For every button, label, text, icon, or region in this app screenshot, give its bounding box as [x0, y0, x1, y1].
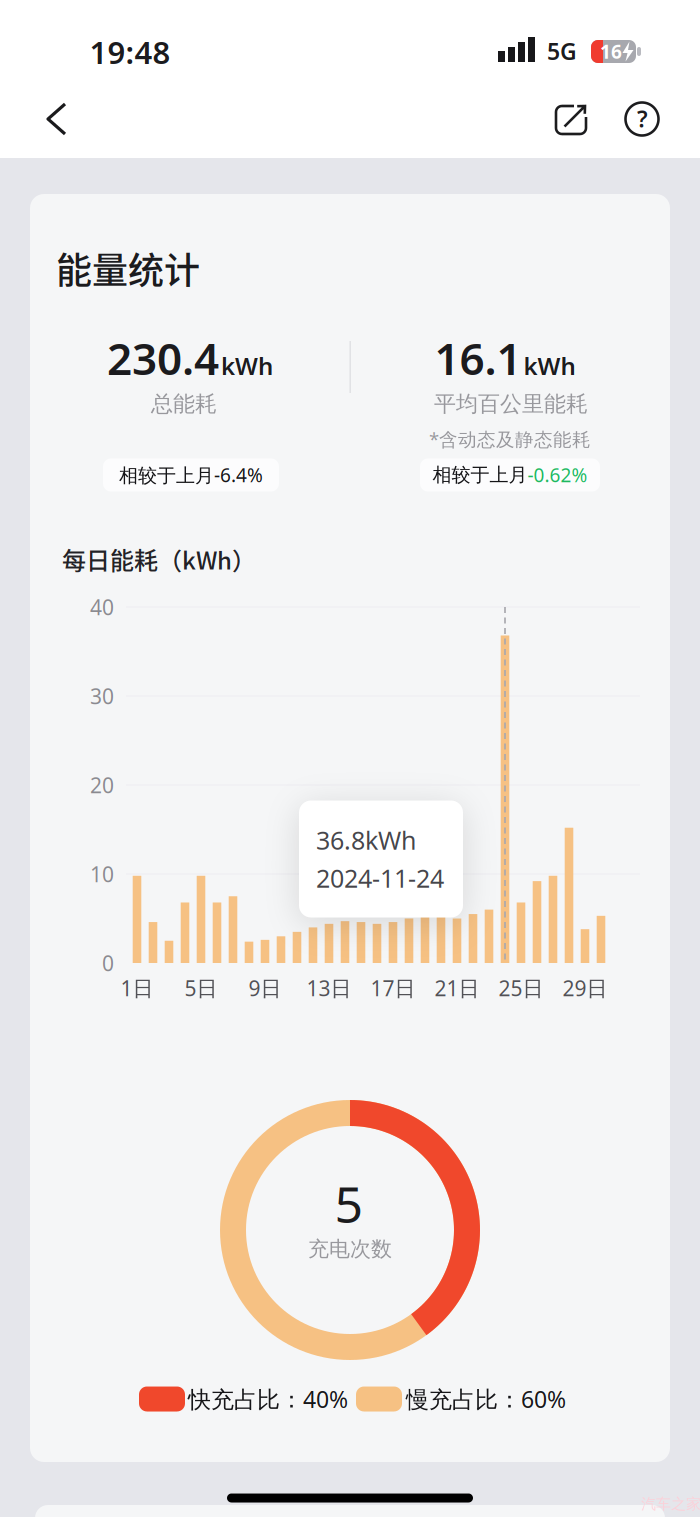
staticText: 17日 [370, 974, 415, 1002]
staticText: *含动态及静态能耗 [429, 427, 591, 451]
staticText: 40 [90, 593, 114, 621]
button[interactable]: Share [549, 97, 593, 141]
staticText: 相较于上月 [432, 463, 527, 487]
staticText: 16.1 [434, 329, 521, 387]
staticText: 平均百公里能耗 [434, 390, 588, 417]
staticText: 30 [90, 682, 114, 710]
staticText: 21日 [434, 974, 479, 1002]
staticText: 36.8kWh [316, 823, 416, 857]
button[interactable]: Help [620, 97, 664, 141]
staticText: 5G [547, 36, 577, 66]
staticText: 0 [102, 949, 114, 977]
staticText: 充电次数 [308, 1236, 392, 1262]
staticText: 13日 [306, 974, 351, 1002]
staticText: 25日 [498, 974, 543, 1002]
staticText: 19:48 [89, 31, 170, 73]
staticText: 16 [600, 39, 622, 64]
staticText: 每日能耗（kWh） [62, 542, 256, 576]
staticText: 相较于上月-6.4% [119, 462, 263, 488]
staticText: 5 [334, 1170, 363, 1236]
staticText: -0.62% [527, 462, 587, 488]
staticText: kWh [523, 350, 575, 382]
staticText: 29日 [562, 974, 607, 1002]
staticText: 230.4 [107, 329, 219, 387]
staticText: 1日 [120, 974, 153, 1002]
staticText: 20 [90, 771, 114, 799]
staticText: 5日 [184, 974, 217, 1002]
staticText: 9日 [248, 974, 281, 1002]
staticText: 快充占比：40% [188, 1384, 348, 1414]
button[interactable]: Back [35, 97, 79, 141]
staticText: 10 [90, 860, 114, 888]
staticText: 慢充占比：60% [406, 1384, 566, 1414]
staticText: kWh [221, 350, 273, 382]
staticText: 总能耗 [151, 390, 217, 417]
staticText: ? [637, 103, 648, 134]
staticText: 2024-11-24 [316, 861, 444, 895]
staticText: 汽车之家 [641, 1495, 700, 1513]
staticText: 能量统计 [56, 243, 200, 293]
